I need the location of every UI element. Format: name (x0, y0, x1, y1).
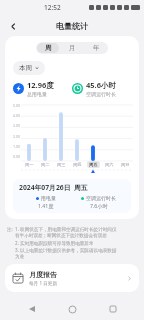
staticText: 周三 (57, 162, 66, 167)
button[interactable]: Back (5, 18, 21, 34)
staticText: 每月 1 日更新 (29, 280, 57, 286)
button[interactable]: 周 (37, 43, 59, 53)
button[interactable]: 周六 (103, 161, 116, 168)
staticText: 4.00 (13, 113, 21, 118)
button[interactable]: 周五 (87, 161, 100, 168)
staticText: 空调运行时长 (86, 195, 116, 201)
button[interactable]: 周四 (71, 161, 84, 168)
staticText: 本周 (19, 64, 32, 72)
staticText: 月 (69, 44, 76, 52)
staticText: 用电量 (41, 195, 56, 201)
staticText: 空调运行时长 (86, 91, 116, 97)
button[interactable]: Recents (104, 300, 122, 318)
staticText: 5.00 (13, 103, 21, 108)
button[interactable]: 周三 (55, 161, 68, 168)
staticText: 12.96度 (27, 80, 54, 90)
staticText: 7.6小时 (90, 202, 108, 209)
staticText: 1.00 (13, 144, 21, 149)
staticText: 3.00 (13, 123, 21, 128)
staticText: 周一 (25, 162, 34, 167)
staticText: 有半小时误差；断网状态下统计数据会有误差 (15, 233, 107, 239)
button[interactable]: Home (63, 300, 81, 318)
staticText: 周日 (121, 162, 130, 167)
button[interactable]: 年 (85, 43, 107, 53)
staticText: 周二 (41, 162, 50, 167)
staticText: 0.00 (13, 154, 21, 159)
staticText: 月度报告 (29, 270, 57, 279)
button[interactable]: 周日 (119, 161, 132, 168)
button[interactable]: 本周 (13, 61, 45, 75)
staticText: 周 (45, 44, 52, 52)
button[interactable]: 周一 (23, 161, 36, 168)
staticText: 周四 (73, 162, 82, 167)
button[interactable]: Back (23, 300, 41, 318)
button[interactable]: 月 (61, 43, 83, 53)
staticText: 为准 (15, 254, 25, 260)
staticText: 周六 (105, 162, 114, 167)
staticText: 总用电量 (27, 91, 47, 97)
button[interactable]: 周二 (39, 161, 52, 168)
staticText: 2. 实时用电跟踪锁可停导致用电量异常 (15, 240, 94, 246)
staticText: 2024年07月26日 周五 (19, 183, 88, 192)
staticText: 1.41度 (38, 202, 54, 209)
staticText: 2.00 (13, 134, 21, 139)
staticText: 12:52 (44, 3, 61, 12)
button[interactable]: 月度报告 (5, 264, 139, 292)
staticText: 周五 (89, 162, 98, 167)
staticText: 45.6小时 (86, 80, 116, 90)
staticText: 注: (7, 226, 13, 232)
staticText: 1. 联网状态下，用电量和空调运行时长统计时间仅 (15, 226, 117, 232)
staticText: 3. 以上电量统计数据仅供参考，实际请以电表数据 (15, 247, 117, 253)
staticText: 年 (93, 44, 100, 52)
staticText: 电量统计 (56, 21, 88, 31)
